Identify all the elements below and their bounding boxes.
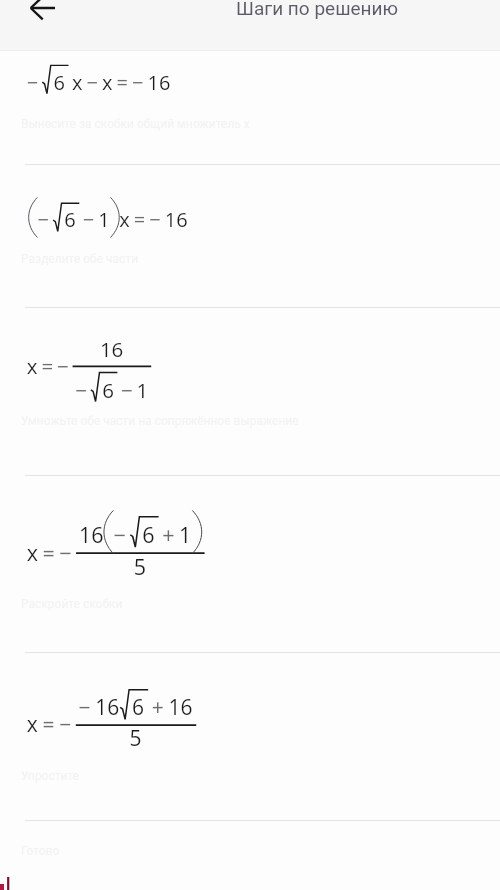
- button[interactable]: Разделите обе части: [0, 164, 500, 307]
- staticText: Раскройте скобки: [21, 597, 123, 611]
- staticText: Разделите обе части: [21, 252, 139, 266]
- button[interactable]: Умножьте обе части на сопряжённое выраже…: [0, 307, 500, 475]
- button[interactable]: Вынесите за скобки общий множитель x: [0, 51, 500, 164]
- button[interactable]: Упростите: [0, 652, 500, 820]
- button[interactable]: Раскройте скобки: [0, 475, 500, 652]
- staticText: Шаги по решению: [236, 0, 399, 19]
- staticText: Упростите: [21, 769, 80, 783]
- staticText: Готово: [21, 844, 60, 858]
- staticText: Вынесите за скобки общий множитель x: [21, 117, 250, 131]
- staticText: Умножьте обе части на сопряжённое выраже…: [21, 414, 299, 428]
- button[interactable]: Back: [19, 0, 67, 32]
